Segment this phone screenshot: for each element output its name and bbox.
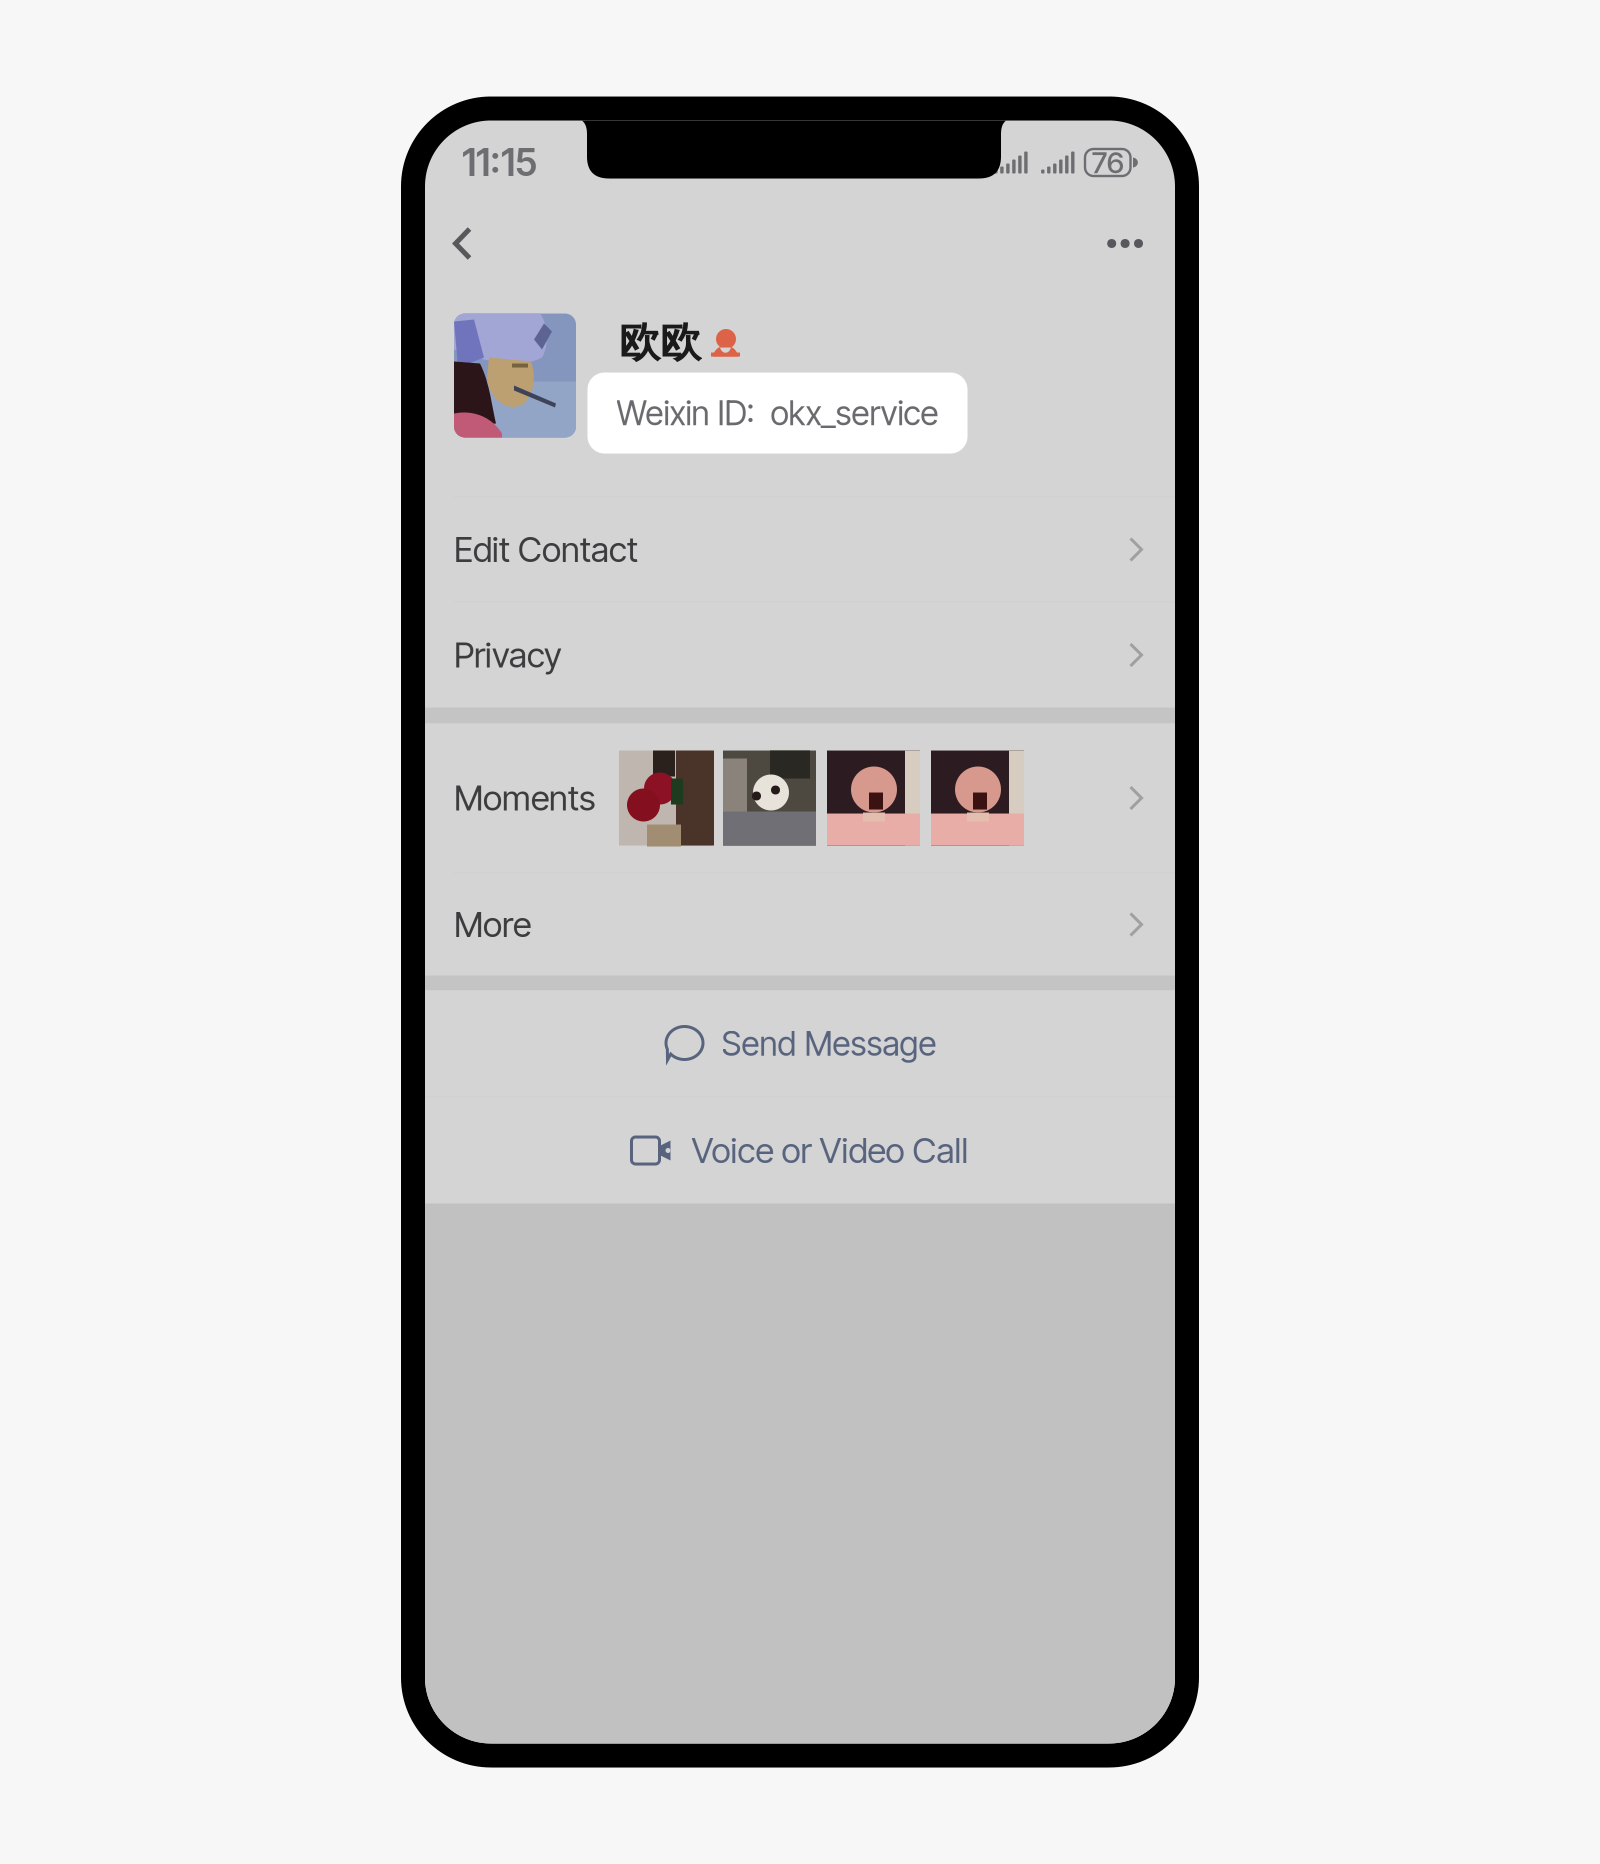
button[interactable]: Edit Contact	[425, 497, 1175, 601]
staticText: Voice or Video Call	[691, 1129, 968, 1171]
staticText: 11:15	[462, 140, 537, 185]
staticText: Weixin ID: okx_service	[616, 393, 938, 433]
staticText: More	[454, 903, 531, 945]
button[interactable]: Moments	[425, 723, 1175, 872]
button[interactable]: Voice or Video Call	[425, 1097, 1175, 1203]
staticText: Edit Contact	[454, 528, 638, 570]
button[interactable]: Privacy	[425, 602, 1175, 707]
button[interactable]: Back	[453, 213, 511, 273]
button[interactable]: More options	[1083, 213, 1143, 273]
staticText: Moments	[454, 777, 595, 819]
staticText: Privacy	[454, 634, 562, 676]
staticText: 76	[1092, 145, 1124, 180]
staticText: 欧欧	[619, 316, 701, 369]
staticText: Send Message	[721, 1023, 936, 1064]
button[interactable]: Send Message	[425, 990, 1175, 1096]
button[interactable]: More	[425, 873, 1175, 975]
